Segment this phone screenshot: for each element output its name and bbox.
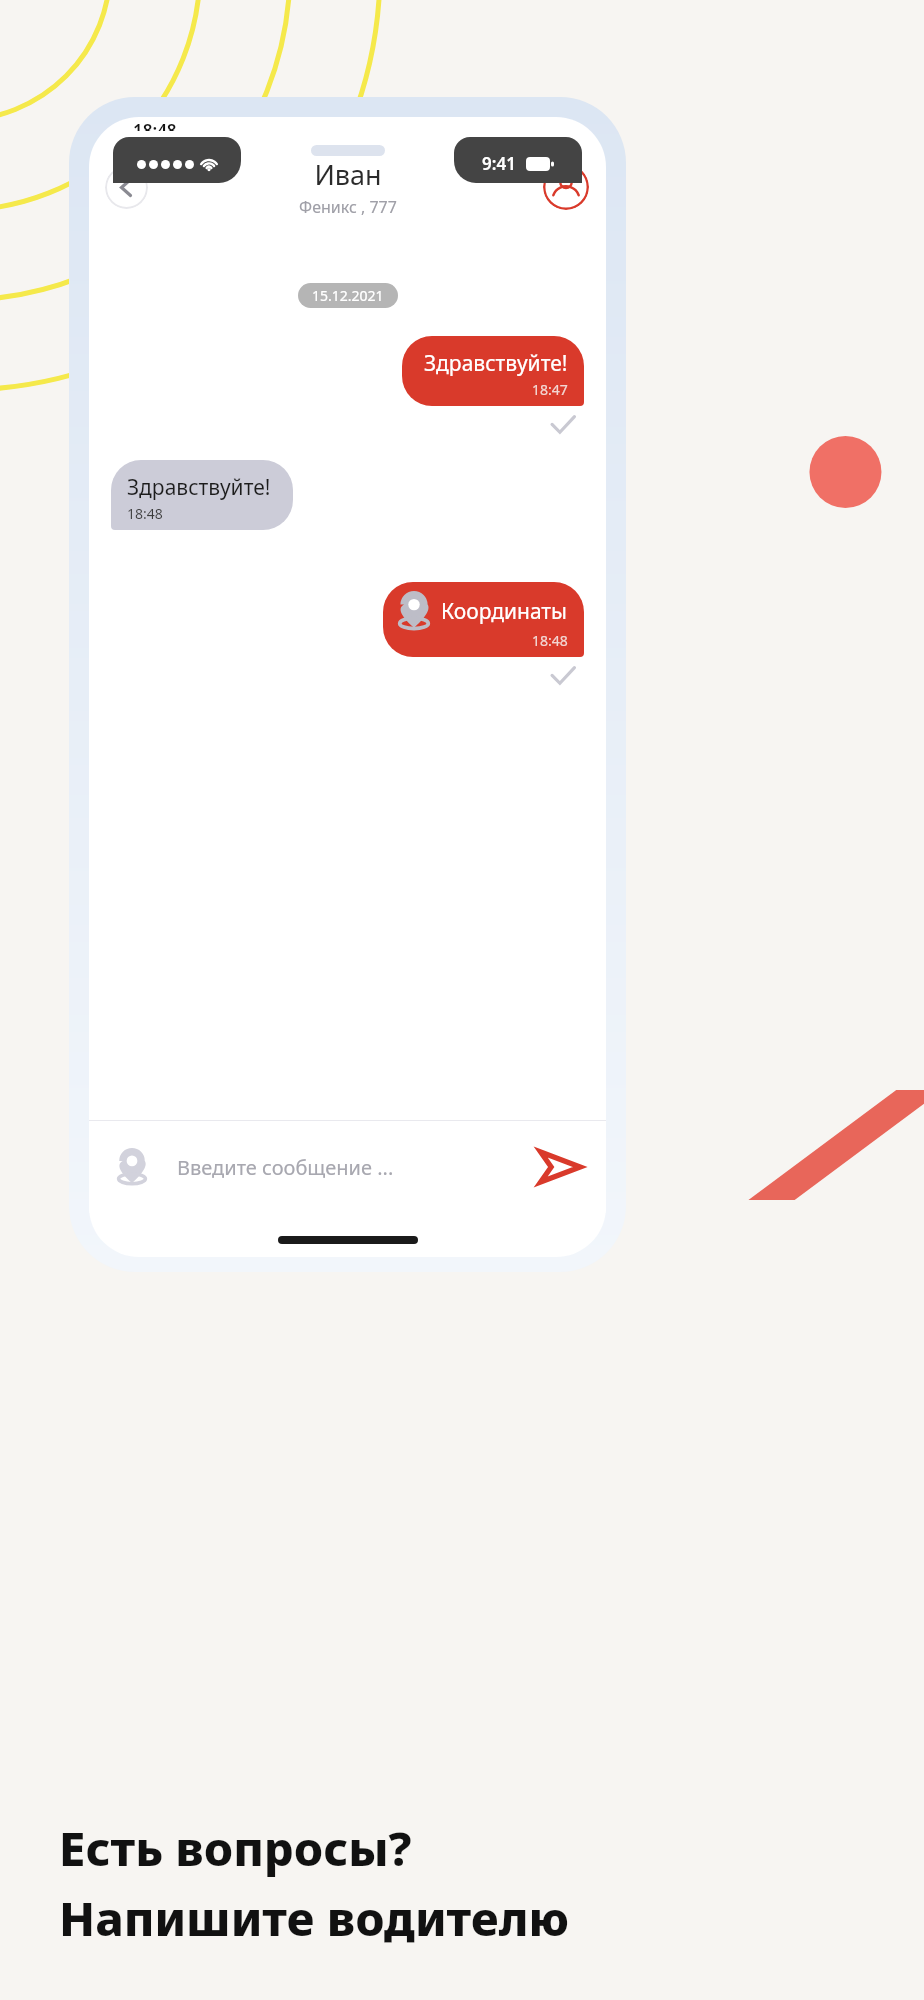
staticText: 18:48 <box>532 631 568 650</box>
staticText: Введите сообщение ... <box>177 1154 394 1181</box>
staticText: 18:48 <box>127 504 163 523</box>
staticText: Здравствуйте! <box>127 473 271 502</box>
button[interactable]: Send <box>534 1141 586 1193</box>
staticText: Здравствуйте! <box>424 349 568 378</box>
staticText: Иван <box>314 156 382 193</box>
staticText: Напишите водителю <box>59 1886 570 1950</box>
button[interactable]: Введите сообщение ... <box>177 1154 524 1181</box>
staticText: Координаты <box>441 597 568 626</box>
staticText: Феникс , 777 <box>299 196 397 218</box>
button[interactable]: Здравствуйте! <box>111 460 293 530</box>
button[interactable]: Здравствуйте! <box>402 336 584 406</box>
staticText: 18:47 <box>532 380 568 399</box>
staticText: 15.12.2021 <box>312 286 384 305</box>
button[interactable]: Координаты <box>383 582 584 657</box>
button[interactable]: Profile <box>543 164 589 210</box>
staticText: 9:41 <box>482 152 516 175</box>
staticText: 18:48 <box>133 119 177 131</box>
button[interactable]: Back <box>105 166 148 209</box>
staticText: Есть вопросы? <box>59 1816 412 1880</box>
button[interactable]: Send location <box>109 1144 155 1190</box>
